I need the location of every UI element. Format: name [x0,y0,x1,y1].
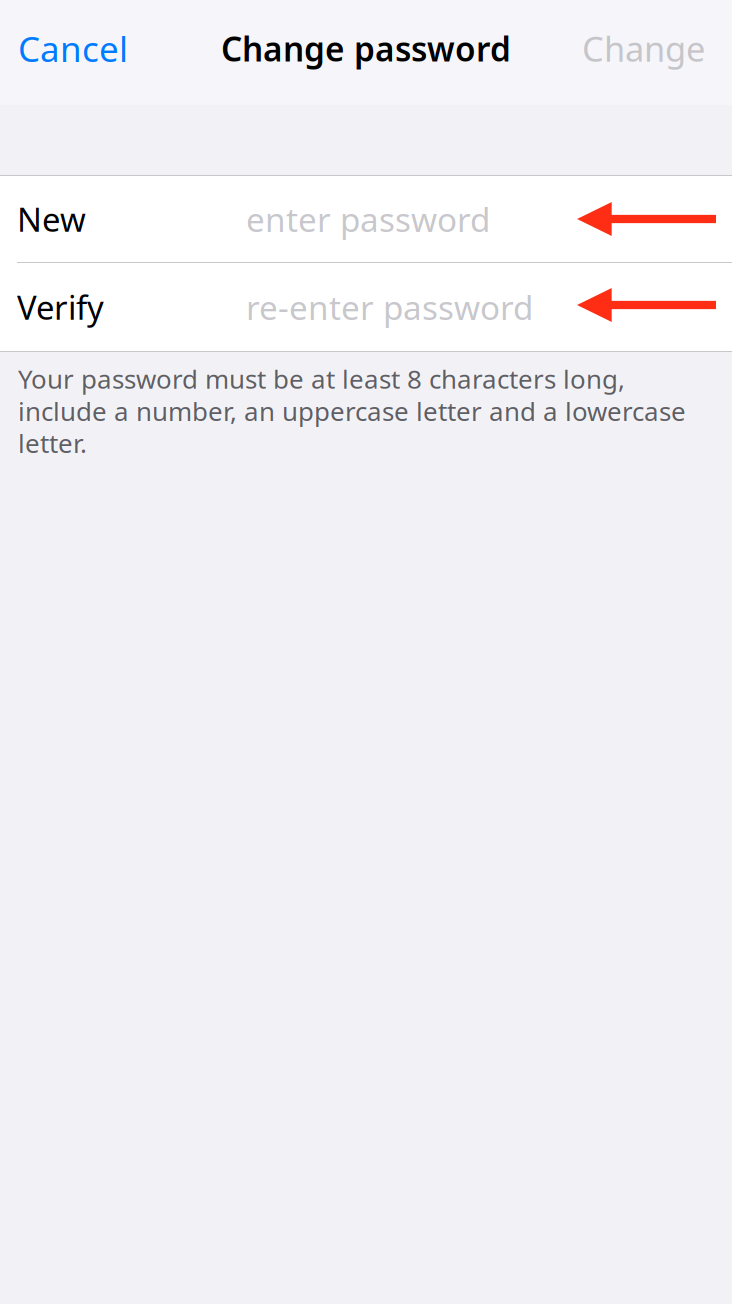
button[interactable]: Verify [0,263,732,351]
button[interactable]: Cancel [0,0,142,105]
staticText: Your password must be at least 8 charact… [18,361,686,461]
staticText: Verify [17,285,104,329]
staticText: enter password [246,196,490,242]
staticText: Change password [221,26,511,71]
button[interactable]: Change [568,0,732,105]
staticText: New [17,197,86,241]
staticText: Cancel [18,25,128,72]
staticText: Change [582,25,705,72]
button[interactable]: New [0,176,732,262]
staticText: re-enter password [246,284,533,330]
